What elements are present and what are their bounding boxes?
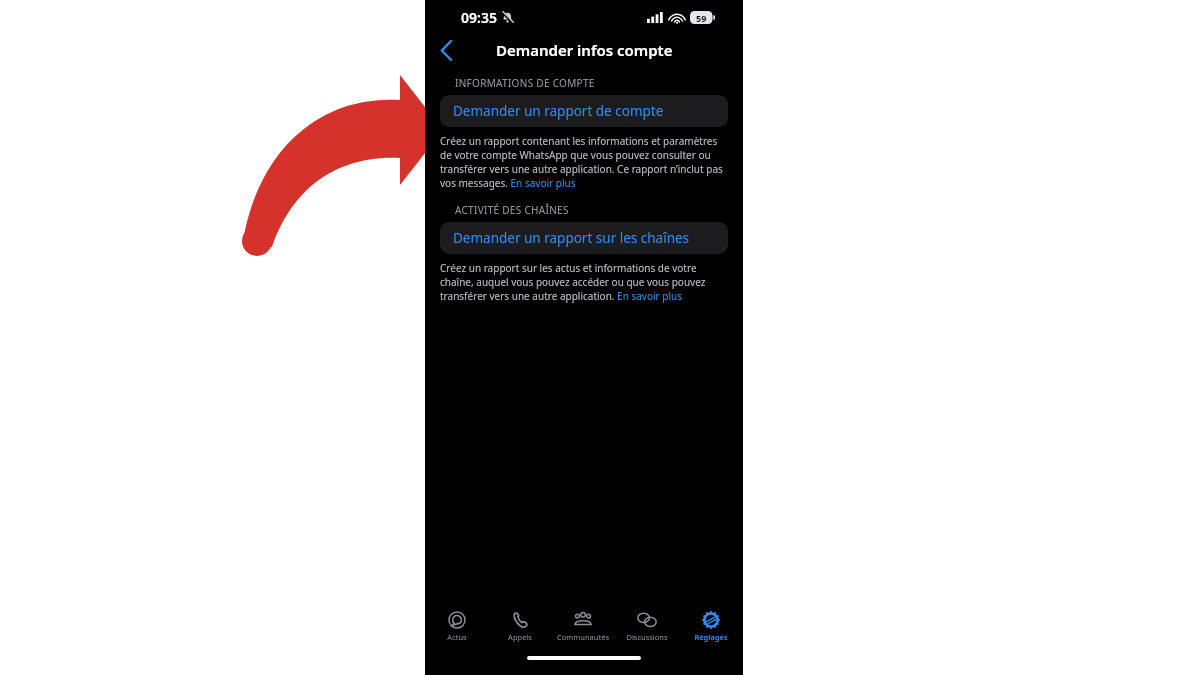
staticText: Réglages bbox=[694, 632, 728, 642]
staticText: Actus bbox=[447, 632, 467, 642]
staticText: 09:35 bbox=[461, 8, 497, 27]
button[interactable]: Demander un rapport de compte bbox=[440, 95, 728, 127]
button[interactable]: Appels bbox=[488, 607, 551, 649]
staticText: INFORMATIONS DE COMPTE bbox=[455, 76, 595, 90]
staticText: ACTIVITÉ DES CHAÎNES bbox=[455, 203, 569, 217]
staticText: Demander infos compte bbox=[496, 40, 673, 60]
button[interactable]: Back bbox=[429, 34, 463, 66]
staticText: Demander un rapport sur les chaînes bbox=[453, 229, 690, 247]
staticText: Communautés bbox=[557, 632, 609, 642]
staticText: 59 bbox=[696, 12, 707, 24]
staticText: Créez un rapport contenant les informati… bbox=[440, 134, 729, 190]
button[interactable]: Demander un rapport sur les chaînes bbox=[440, 222, 728, 254]
button[interactable]: Réglages bbox=[679, 607, 743, 649]
button[interactable]: Communautés bbox=[551, 607, 615, 649]
button[interactable]: Discussions bbox=[615, 607, 679, 649]
staticText: Discussions bbox=[626, 632, 668, 642]
staticText: Créez un rapport sur les actus et inform… bbox=[440, 261, 729, 303]
staticText: Demander un rapport de compte bbox=[453, 102, 664, 120]
button[interactable]: Actus bbox=[425, 607, 488, 649]
staticText: Appels bbox=[508, 632, 532, 642]
